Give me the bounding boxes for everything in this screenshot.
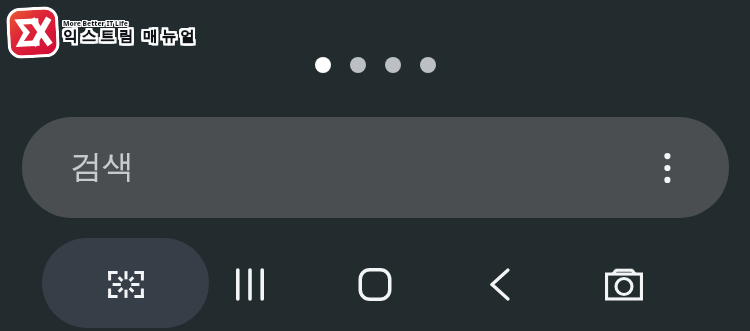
button[interactable]: Back	[460, 243, 540, 323]
staticText: 익스트림	[63, 25, 137, 43]
staticText: 검색	[70, 146, 134, 186]
staticText: 익스트림	[61, 27, 135, 45]
staticText: 익스트림	[63, 27, 137, 45]
staticText: More Better IT Life	[62, 19, 127, 28]
staticText: 매뉴얼	[141, 25, 197, 43]
staticText: 매뉴얼	[143, 29, 199, 47]
button[interactable]: 검색	[22, 117, 729, 218]
button[interactable]: Home	[335, 243, 415, 323]
staticText: More Better IT Life	[63, 20, 128, 29]
staticText: 매뉴얼	[141, 27, 197, 45]
staticText: More Better IT Life	[64, 20, 129, 29]
staticText: 매뉴얼	[145, 27, 201, 45]
button[interactable]: Screenshot	[42, 238, 209, 328]
staticText: 익스트림	[59, 25, 133, 43]
staticText: 익스트림	[59, 29, 133, 47]
button[interactable]: More options	[636, 136, 700, 200]
staticText: More Better IT Life	[62, 18, 127, 27]
button[interactable]: Camera	[584, 243, 664, 323]
staticText: 익스트림	[61, 25, 135, 43]
staticText: 매뉴얼	[143, 25, 199, 43]
staticText: 익스트림	[61, 29, 135, 47]
staticText: More Better IT Life	[64, 18, 129, 27]
staticText: 매뉴얼	[141, 29, 197, 47]
staticText: More Better IT Life	[63, 18, 128, 27]
staticText: 매뉴얼	[145, 25, 201, 43]
button[interactable]: Recent apps	[210, 243, 290, 323]
staticText: 익스트림	[59, 27, 133, 45]
staticText: 매뉴얼	[145, 29, 201, 47]
staticText: 매뉴얼	[143, 27, 199, 45]
staticText: More Better IT Life	[62, 20, 127, 29]
staticText: 익스트림	[63, 29, 137, 47]
staticText: More Better IT Life	[63, 19, 128, 28]
staticText: More Better IT Life	[64, 19, 129, 28]
button[interactable]: Screenshot	[86, 243, 166, 323]
